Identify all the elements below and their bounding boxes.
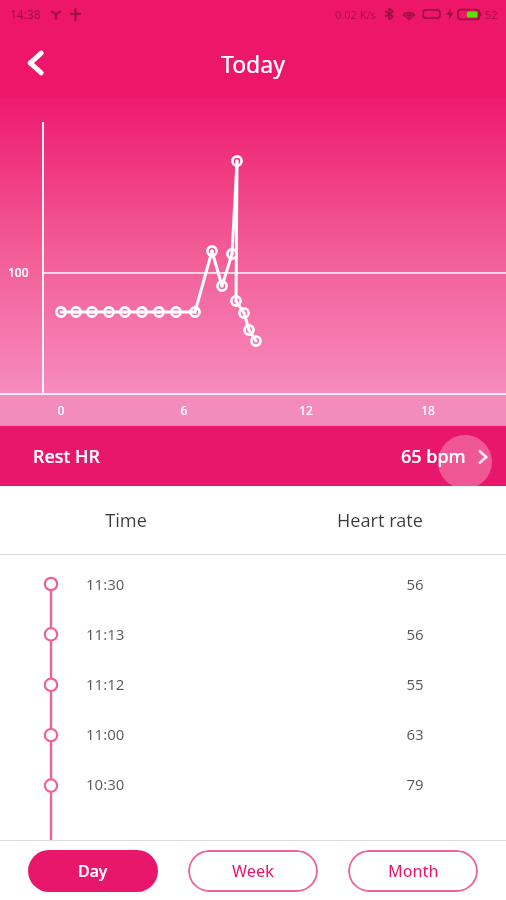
staticText: 10:30 (86, 774, 125, 794)
staticText: Day (78, 860, 108, 882)
staticText: 18 (418, 402, 438, 418)
staticText: Heart rate (320, 508, 440, 533)
staticText: 79 (355, 774, 475, 794)
button[interactable]: 10:30 (0, 755, 506, 805)
staticText: 11:12 (86, 674, 125, 694)
staticText: 56 (355, 624, 475, 644)
staticText: Week (232, 860, 275, 882)
staticText: 11:13 (86, 624, 125, 644)
staticText: 100 (8, 264, 29, 280)
staticText: 55 (355, 674, 475, 694)
button[interactable]: 11:00 (0, 705, 506, 755)
staticText: 0 (51, 402, 71, 418)
button[interactable]: Week (188, 850, 318, 892)
staticText: Today (221, 48, 285, 79)
staticText: 56 (355, 574, 475, 594)
button[interactable]: 11:30 (0, 555, 506, 605)
button[interactable]: 11:12 (0, 655, 506, 705)
staticText: 11:00 (86, 724, 125, 744)
staticText: 6 (174, 402, 194, 418)
staticText: Rest HR (33, 444, 100, 469)
staticText: Month (388, 860, 439, 882)
button[interactable]: 11:13 (0, 605, 506, 655)
button[interactable]: Month (348, 850, 478, 892)
staticText: Time (86, 508, 166, 533)
button[interactable]: Back (8, 35, 64, 91)
button[interactable]: Day (28, 850, 158, 892)
staticText: 11:30 (86, 574, 125, 594)
staticText: 12 (296, 402, 316, 418)
staticText: 65 bpm (401, 444, 466, 469)
staticText: 63 (355, 724, 475, 744)
button[interactable]: Rest HR (0, 426, 506, 486)
staticText: 14:38 (10, 6, 41, 22)
staticText: 0.02 K/s (335, 7, 376, 22)
staticText: 52 (485, 7, 498, 22)
